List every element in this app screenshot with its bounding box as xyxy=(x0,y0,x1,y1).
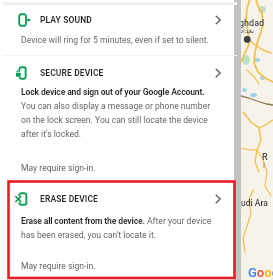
staticText: udi Ara xyxy=(241,198,268,208)
staticText: May require sign-in. xyxy=(21,261,96,271)
button[interactable]: ERASE DEVICE xyxy=(0,190,234,208)
button[interactable]: PLAY SOUND xyxy=(0,11,234,29)
staticText: Goog xyxy=(248,265,273,280)
other: Play sound xyxy=(212,15,222,25)
staticText: PLAY SOUND xyxy=(40,15,92,25)
staticText: R xyxy=(262,152,268,163)
other: Secure device xyxy=(212,68,222,78)
staticText: May require sign-in. xyxy=(21,163,96,173)
staticText: SECURE DEVICE xyxy=(40,68,104,78)
staticText: ا xyxy=(263,162,265,170)
staticText: ghdad xyxy=(239,18,265,29)
staticText: Lock device and sign out of your Google … xyxy=(21,87,213,139)
staticText: بغداد xyxy=(240,27,255,35)
staticText: ERASE DEVICE xyxy=(40,194,98,204)
staticText: Erase all content from the device. After… xyxy=(21,216,213,240)
other: Erase device xyxy=(212,194,222,204)
staticText: Device will ring for 5 minutes, even if … xyxy=(21,35,209,45)
button[interactable]: SECURE DEVICE xyxy=(0,64,234,82)
